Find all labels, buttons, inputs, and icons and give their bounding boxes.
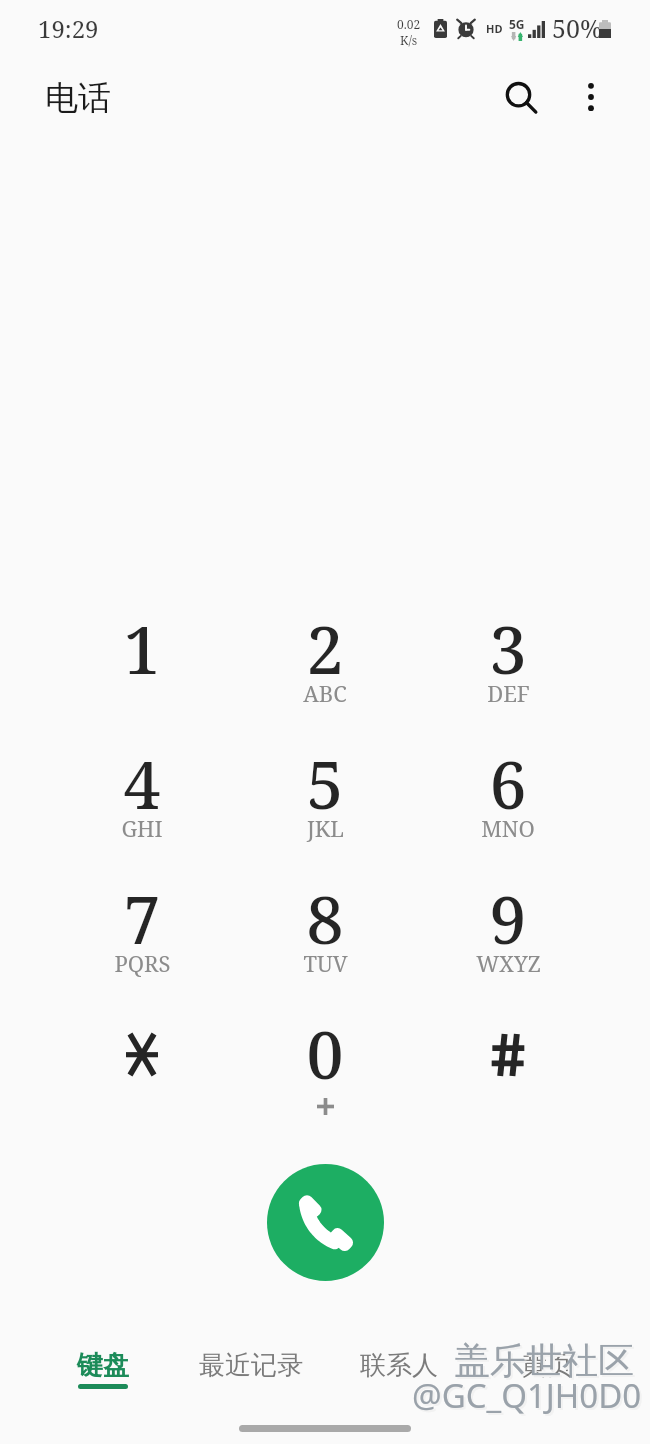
button[interactable]: [70, 1008, 214, 1136]
staticText: 4: [123, 738, 161, 828]
staticText: PQRS: [114, 948, 171, 978]
staticText: ABC: [303, 678, 347, 708]
button[interactable]: 0: [253, 1008, 397, 1136]
staticText: 5: [306, 738, 344, 828]
staticText: 黄页: [521, 1349, 573, 1382]
staticText: JKL: [307, 813, 344, 843]
staticText: 3: [489, 603, 527, 693]
staticText: 2: [306, 603, 344, 693]
staticText: @GC_Q1JH0D0: [412, 1373, 642, 1418]
button[interactable]: 3: [436, 603, 580, 731]
button[interactable]: 联系人: [325, 1330, 473, 1402]
button[interactable]: 1: [70, 603, 214, 731]
staticText: 8: [306, 873, 344, 963]
staticText: DEF: [487, 678, 530, 708]
staticText: WXYZ: [476, 948, 541, 978]
staticText: 盖乐世社区: [454, 1338, 634, 1383]
staticText: 0: [306, 1008, 344, 1098]
button[interactable]: 8: [253, 873, 397, 1001]
staticText: 1: [123, 603, 161, 693]
button[interactable]: 键盘: [29, 1330, 177, 1402]
staticText: 0.02: [397, 16, 421, 32]
button[interactable]: 9: [436, 873, 580, 1001]
staticText: TUV: [303, 948, 348, 978]
staticText: 盖乐世社区: [456, 1340, 636, 1385]
button[interactable]: Call: [267, 1164, 384, 1281]
staticText: GHI: [121, 813, 163, 843]
button[interactable]: Search: [501, 77, 549, 125]
staticText: 联系人: [360, 1349, 438, 1382]
staticText: 5G: [509, 16, 525, 32]
staticText: 50%: [552, 11, 603, 45]
staticText: 7: [123, 873, 161, 963]
staticText: 9: [489, 873, 527, 963]
button[interactable]: 6: [436, 738, 580, 866]
staticText: 最近记录: [199, 1349, 303, 1382]
button[interactable]: 7: [70, 873, 214, 1001]
staticText: K/s: [400, 32, 418, 48]
staticText: 键盘: [77, 1349, 129, 1382]
staticText: 6: [489, 738, 527, 828]
button[interactable]: 5: [253, 738, 397, 866]
staticText: HD: [486, 21, 503, 36]
button[interactable]: 最近记录: [177, 1330, 325, 1402]
button[interactable]: 4: [70, 738, 214, 866]
staticText: @GC_Q1JH0D0: [414, 1375, 644, 1420]
staticText: MNO: [481, 813, 535, 843]
button[interactable]: 黄页: [473, 1330, 621, 1402]
button[interactable]: 2: [253, 603, 397, 731]
button[interactable]: More options: [567, 73, 615, 121]
staticText: 19:29: [38, 12, 99, 45]
button[interactable]: [436, 1008, 580, 1136]
staticText: 电话: [45, 77, 111, 119]
